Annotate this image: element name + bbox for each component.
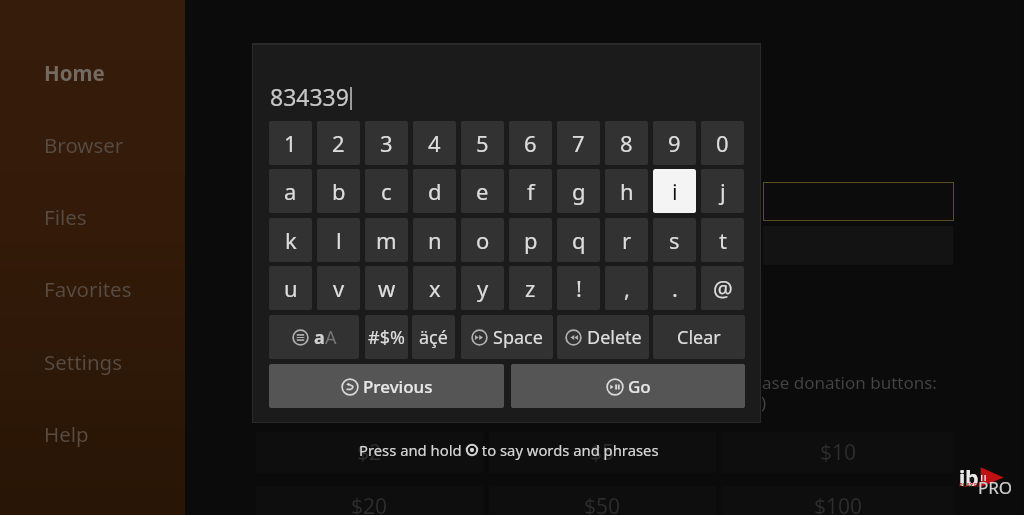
staticText: Browser (44, 131, 124, 159)
staticText: $10 (820, 438, 857, 467)
button[interactable]: 3 (365, 121, 408, 165)
button[interactable]: q (557, 218, 600, 262)
staticText: 4 (428, 128, 441, 158)
button[interactable]: n (413, 218, 456, 262)
button[interactable]: m (365, 218, 408, 262)
staticText: Space (493, 325, 543, 350)
button[interactable]: i (653, 169, 696, 213)
staticText: s (669, 225, 680, 255)
button[interactable]: y (461, 266, 504, 310)
button[interactable]: o (461, 218, 504, 262)
button[interactable]: $50 (489, 486, 716, 515)
staticText: w (378, 273, 396, 303)
button[interactable]: v (317, 266, 360, 310)
staticText: r (622, 225, 632, 255)
staticText: c (381, 176, 392, 206)
button[interactable]: 4 (413, 121, 456, 165)
staticText: 5 (476, 128, 489, 158)
button[interactable]: c (365, 169, 408, 213)
button[interactable]: @ (701, 266, 744, 310)
button[interactable]: $100 (722, 486, 954, 515)
button[interactable]: k (269, 218, 312, 262)
button[interactable]: 9 (653, 121, 696, 165)
staticText: b (332, 176, 346, 206)
staticText: 3 (380, 128, 393, 158)
staticText: 9 (668, 128, 681, 158)
staticText: Clear (677, 325, 721, 350)
button[interactable]: Help (0, 416, 185, 452)
button[interactable]: z (509, 266, 552, 310)
button[interactable]: . (653, 266, 696, 310)
button[interactable]: h (605, 169, 648, 213)
button[interactable]: l (317, 218, 360, 262)
staticText: $2 (357, 438, 382, 467)
staticText: a (284, 176, 297, 206)
button[interactable]: d (413, 169, 456, 213)
button[interactable]: p (509, 218, 552, 262)
button[interactable]: t (701, 218, 744, 262)
staticText: $50 (584, 492, 621, 515)
button[interactable]: $5 (489, 432, 716, 473)
staticText: v (333, 273, 345, 303)
staticText: g (572, 176, 586, 206)
button[interactable]: Space (461, 315, 553, 359)
staticText: m (376, 225, 397, 255)
button[interactable]: f (509, 169, 552, 213)
staticText: e (476, 176, 489, 206)
button[interactable]: g (557, 169, 600, 213)
staticText: , (624, 273, 630, 303)
staticText: 6 (524, 128, 537, 158)
button[interactable]: 5 (461, 121, 504, 165)
button[interactable]: , (605, 266, 648, 310)
button[interactable]: 6 (509, 121, 552, 165)
button[interactable]: 0 (701, 121, 744, 165)
staticText: Delete (587, 325, 642, 350)
button[interactable]: e (461, 169, 504, 213)
button[interactable]: Files (0, 199, 185, 235)
staticText: PLAYER (959, 481, 981, 489)
button[interactable]: x (413, 266, 456, 310)
staticText: i (672, 176, 678, 206)
staticText: u (284, 273, 298, 303)
staticText: 1 (284, 128, 297, 158)
button[interactable]: äçé (412, 315, 455, 359)
button[interactable]: 2 (317, 121, 360, 165)
button[interactable]: Settings (0, 344, 185, 380)
button[interactable]: #$% (365, 315, 408, 359)
staticText: h (620, 176, 634, 206)
staticText: #$% (368, 325, 405, 350)
button[interactable] (763, 182, 954, 221)
button[interactable]: Clear (653, 315, 745, 359)
button[interactable]: $10 (722, 432, 954, 473)
button[interactable]: ! (557, 266, 600, 310)
button[interactable]: a (269, 315, 359, 359)
button[interactable]: a (269, 169, 312, 213)
staticText: d (428, 176, 442, 206)
button[interactable]: 8 (605, 121, 648, 165)
button[interactable]: b (317, 169, 360, 213)
button[interactable]: $2 (256, 432, 483, 473)
staticText: Help (44, 420, 89, 448)
button[interactable]: $20 (256, 486, 483, 515)
staticText: Favorites (44, 275, 132, 303)
button[interactable]: r (605, 218, 648, 262)
button[interactable]: Browser (0, 127, 185, 163)
button[interactable]: 7 (557, 121, 600, 165)
staticText: ) (761, 391, 767, 414)
button[interactable]: Delete (557, 315, 649, 359)
staticText: PRO (978, 476, 1013, 499)
button[interactable]: Previous (269, 364, 504, 408)
staticText: . (672, 273, 678, 303)
button[interactable]: w (365, 266, 408, 310)
button[interactable]: 1 (269, 121, 312, 165)
staticText: y (477, 273, 489, 303)
button[interactable]: Home (0, 55, 185, 91)
button[interactable]: Go (511, 364, 745, 408)
button[interactable]: Favorites (0, 271, 185, 307)
button[interactable]: s (653, 218, 696, 262)
button[interactable]: u (269, 266, 312, 310)
button[interactable]: j (701, 169, 744, 213)
staticText: z (525, 273, 536, 303)
staticText: Press and hold (359, 440, 466, 460)
